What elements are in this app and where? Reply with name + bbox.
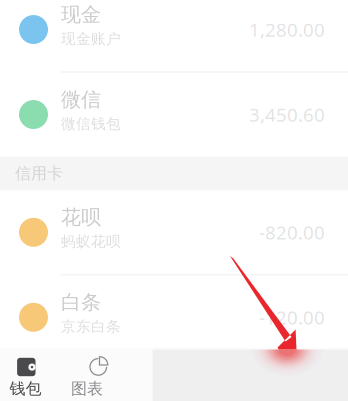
staticText: 微信 xyxy=(61,87,101,112)
staticText: -120.00 xyxy=(259,305,325,330)
staticText: 1,280.00 xyxy=(249,17,325,42)
button[interactable]: 白条 xyxy=(0,275,348,359)
staticText: 现金账户 xyxy=(61,30,121,48)
button[interactable]: 钱包 xyxy=(0,347,51,401)
staticText: 微信钱包 xyxy=(61,115,121,133)
button[interactable]: 图表 xyxy=(51,347,123,401)
button[interactable]: 花呗 xyxy=(0,190,348,274)
staticText: 3,450.60 xyxy=(249,102,325,127)
staticText: 信用卡 xyxy=(15,164,63,183)
staticText: 蚂蚁花呗 xyxy=(61,233,121,251)
staticText: 白条 xyxy=(61,290,101,315)
staticText: -820.00 xyxy=(259,220,325,245)
staticText: 图表 xyxy=(71,379,103,398)
staticText: 现金 xyxy=(61,2,101,27)
staticText: 钱包 xyxy=(9,379,41,398)
staticText: 花呗 xyxy=(61,205,101,230)
staticText: 京东白条 xyxy=(61,318,121,336)
button[interactable]: 微信 xyxy=(0,72,348,156)
button[interactable]: 现金 xyxy=(0,0,348,71)
